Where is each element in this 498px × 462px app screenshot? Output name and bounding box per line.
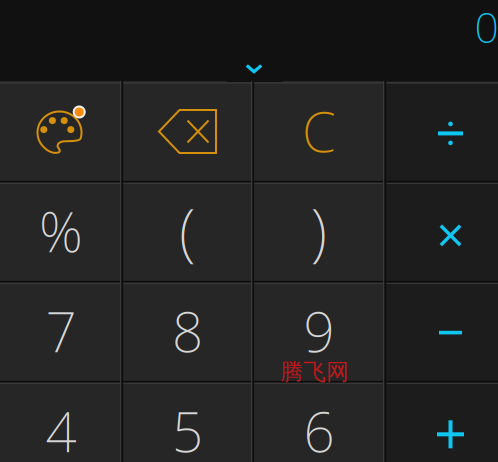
button[interactable]: Clear bbox=[253, 81, 385, 181]
staticText: % bbox=[39, 195, 83, 267]
button[interactable]: 9 bbox=[253, 281, 385, 381]
staticText: 8 bbox=[172, 295, 203, 367]
button[interactable]: Percent bbox=[0, 181, 122, 281]
staticText: 0 bbox=[474, 0, 498, 55]
staticText: 腾飞网 bbox=[280, 358, 349, 386]
button[interactable]: Subtract bbox=[385, 281, 498, 381]
button[interactable]: Multiply bbox=[385, 181, 498, 281]
button[interactable]: Show history bbox=[226, 54, 282, 82]
staticText: ( bbox=[179, 188, 196, 272]
button[interactable]: 8 bbox=[122, 281, 253, 381]
button[interactable]: 6 bbox=[253, 381, 385, 462]
staticText: 4 bbox=[45, 395, 76, 462]
staticText: C bbox=[302, 95, 336, 167]
button[interactable]: 7 bbox=[0, 281, 122, 381]
button[interactable]: Close parenthesis bbox=[253, 181, 385, 281]
staticText: 9 bbox=[303, 295, 334, 367]
staticText: 6 bbox=[303, 395, 334, 462]
staticText: ) bbox=[310, 188, 327, 272]
button[interactable]: Open parenthesis bbox=[122, 181, 253, 281]
button[interactable]: Themes bbox=[0, 81, 122, 181]
button[interactable]: 4 bbox=[0, 381, 122, 462]
button[interactable]: 5 bbox=[122, 381, 253, 462]
button[interactable]: Divide bbox=[385, 81, 498, 181]
staticText: 7 bbox=[45, 295, 76, 367]
button[interactable]: Delete bbox=[122, 81, 253, 181]
button[interactable]: Add bbox=[385, 381, 498, 462]
staticText: 5 bbox=[172, 395, 203, 462]
